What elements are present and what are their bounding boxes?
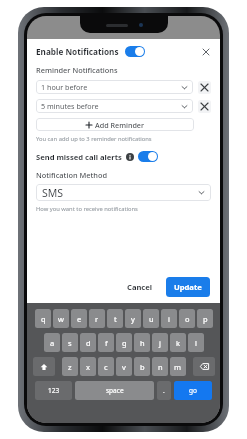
button[interactable]: . [157,381,171,400]
button[interactable]: Cancel [121,278,159,296]
staticText: go [189,386,197,395]
button[interactable]: Shift [33,357,55,376]
button[interactable]: o [179,309,195,328]
button[interactable]: 1 hour before [36,80,193,94]
button[interactable]: i [161,309,177,328]
staticText: h [140,338,145,348]
staticText: Enable Notifications [36,46,119,57]
button[interactable]: n [152,357,168,376]
staticText: v [122,362,126,372]
button[interactable]: Update [166,277,210,297]
button[interactable]: go [174,381,212,400]
staticText: g [122,338,127,348]
staticText: e [77,314,82,324]
staticText: z [68,362,72,372]
button[interactable]: u [143,309,159,328]
button[interactable]: Send missed call alerts [36,151,158,162]
staticText: a [50,338,55,348]
button[interactable]: h [134,333,150,352]
button[interactable]: l [188,333,204,352]
button[interactable]: SMS [36,184,211,201]
staticText: l [195,338,197,348]
button[interactable]: Remove reminder [198,81,211,94]
staticText: 1 hour before [41,82,181,92]
other: Info [126,153,134,161]
staticText: How you want to receive notifications [36,205,138,213]
staticText: Cancel [127,282,153,292]
staticText: b [140,362,145,372]
button[interactable]: g [116,333,132,352]
staticText: f [105,338,108,348]
button[interactable]: s [62,333,78,352]
button[interactable]: Close [200,46,211,57]
button[interactable]: y [125,309,141,328]
button[interactable]: a [44,333,60,352]
button[interactable]: j [152,333,168,352]
staticText: Update [174,282,202,292]
staticText: Add Reminder [95,120,145,130]
button[interactable]: f [98,333,114,352]
staticText: q [41,314,46,324]
staticText: Send missed call alerts [36,152,122,162]
staticText: x [86,362,90,372]
button[interactable]: space [75,381,154,400]
staticText: o [185,314,190,324]
staticText: w [58,314,64,324]
staticText: y [131,314,135,324]
staticText: s [68,338,72,348]
staticText: n [158,362,163,372]
button[interactable]: q [35,309,51,328]
button[interactable]: 123 [35,381,72,400]
staticText: d [86,338,91,348]
staticText: 123 [48,386,60,395]
staticText: space [106,386,124,395]
button[interactable]: x [80,357,96,376]
staticText: . [163,386,165,395]
button[interactable]: 5 minutes before [36,99,193,113]
staticText: i [168,314,170,324]
staticText: Reminder Notifications [36,65,118,75]
button[interactable]: Toggle [138,151,158,162]
button[interactable]: k [170,333,186,352]
button[interactable]: m [170,357,186,376]
button[interactable]: d [80,333,96,352]
button[interactable]: w [53,309,69,328]
button[interactable]: r [89,309,105,328]
staticText: SMS [42,186,198,200]
button[interactable]: z [62,357,78,376]
button[interactable]: t [107,309,123,328]
button[interactable]: Enable Notifications [36,46,145,57]
button[interactable]: v [116,357,132,376]
button[interactable]: Backspace [193,357,215,376]
staticText: j [159,338,161,348]
button[interactable]: p [197,309,213,328]
button[interactable]: e [71,309,87,328]
staticText: t [114,314,117,324]
staticText: k [176,338,181,348]
button[interactable]: Remove reminder [198,100,211,113]
staticText: p [203,314,208,324]
staticText: c [104,362,108,372]
staticText: u [149,314,154,324]
staticText: Notification Method [36,170,108,180]
staticText: r [95,314,99,324]
staticText: 5 minutes before [41,101,181,111]
staticText: m [174,362,182,372]
button[interactable]: c [98,357,114,376]
button[interactable]: Add Reminder [36,118,194,131]
button[interactable]: b [134,357,150,376]
button[interactable]: Toggle [125,46,145,57]
staticText: You can add up to 3 reminder notificatio… [36,135,152,143]
